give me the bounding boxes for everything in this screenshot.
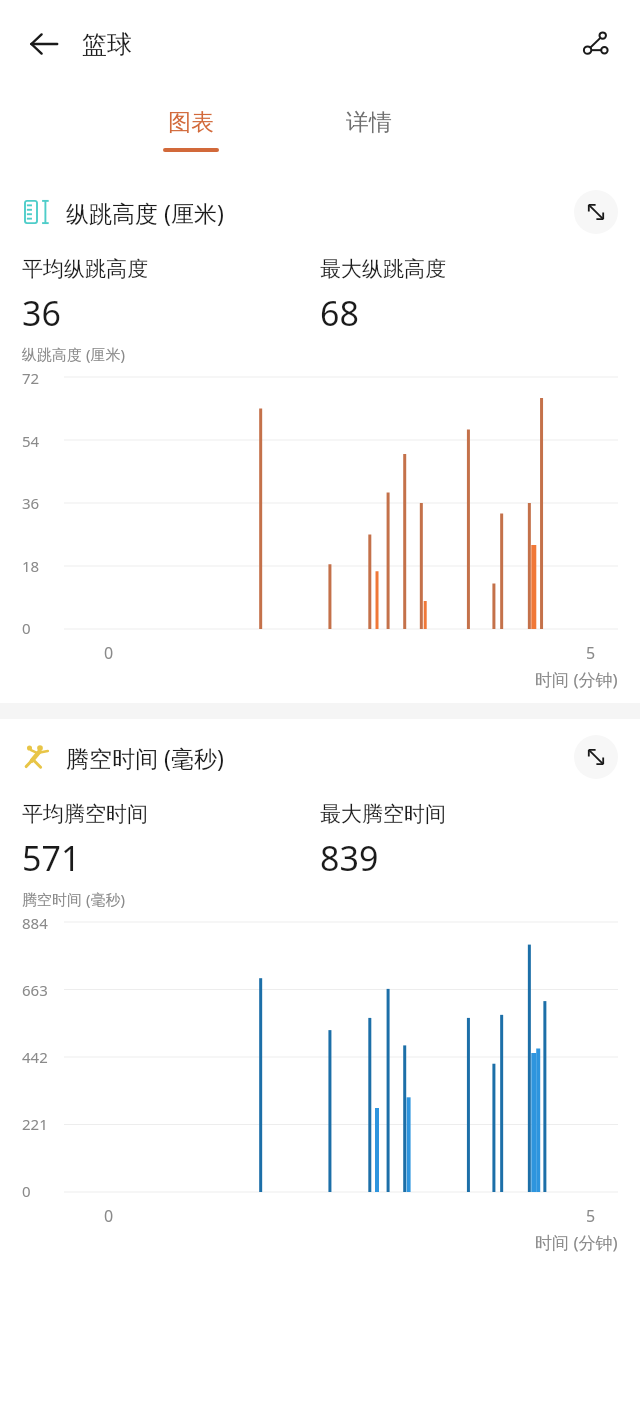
staticText: 腾空时间 (毫秒) (22, 889, 125, 909)
staticText: 18 (22, 556, 64, 576)
staticText: 54 (22, 431, 64, 451)
staticText: 图表 (168, 108, 214, 137)
staticText: 663 (22, 980, 64, 1000)
button[interactable]: Share (570, 18, 622, 70)
staticText: 详情 (346, 108, 392, 137)
button[interactable]: 详情 (328, 104, 410, 152)
staticText: 最大纵跳高度 (320, 256, 446, 282)
staticText: 221 (22, 1114, 64, 1134)
staticText: 0 (104, 642, 114, 664)
staticText: 平均纵跳高度 (22, 256, 148, 282)
staticText: 36 (22, 493, 64, 513)
staticText: 5 (586, 642, 596, 664)
staticText: 5 (586, 1205, 596, 1227)
staticText: 时间 (分钟) (535, 668, 618, 691)
staticText: 0 (22, 1181, 64, 1201)
button[interactable]: Expand chart (574, 735, 618, 779)
staticText: 纵跳高度 (厘米) (66, 197, 224, 228)
staticText: 平均腾空时间 (22, 801, 148, 827)
button[interactable]: 图表 (150, 104, 232, 152)
button[interactable]: Expand chart (574, 190, 618, 234)
staticText: 最大腾空时间 (320, 801, 446, 827)
staticText: 纵跳高度 (厘米) (22, 344, 125, 364)
staticText: 442 (22, 1047, 64, 1067)
staticText: 0 (22, 618, 64, 638)
staticText: 腾空时间 (毫秒) (66, 742, 224, 773)
staticText: 72 (22, 368, 64, 388)
button[interactable]: Back (18, 18, 70, 70)
staticText: 68 (320, 290, 359, 336)
staticText: 571 (22, 835, 81, 881)
staticText: 884 (22, 913, 64, 933)
staticText: 时间 (分钟) (535, 1231, 618, 1254)
staticText: 0 (104, 1205, 114, 1227)
staticText: 篮球 (82, 29, 132, 60)
staticText: 839 (320, 835, 379, 881)
staticText: 36 (22, 290, 61, 336)
